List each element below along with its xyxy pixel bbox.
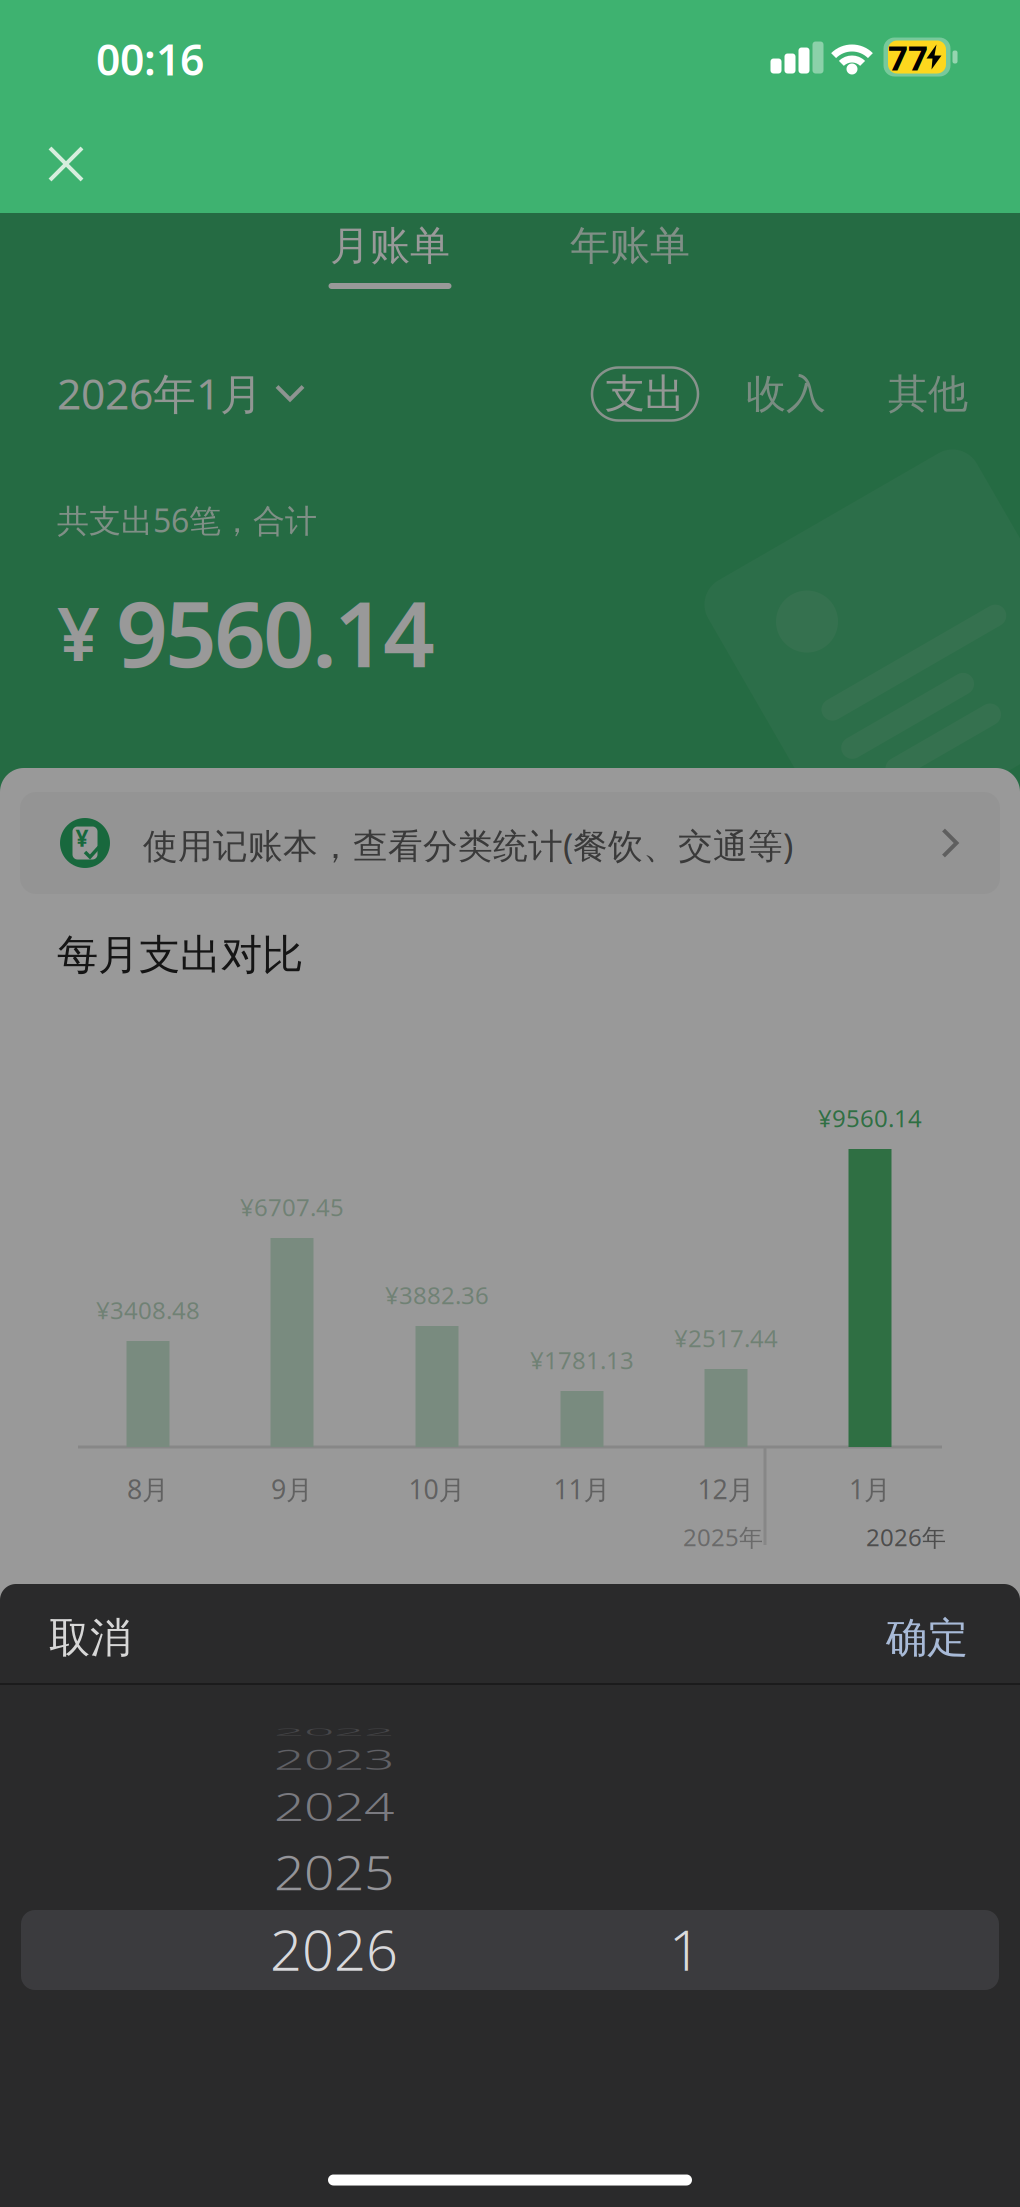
staticText: 2025 [274,1837,394,1907]
button[interactable]: 2026年1月 [57,361,457,425]
button[interactable]: 收入 [733,367,839,420]
button[interactable]: Close [48,146,84,182]
staticText: 2026年 [866,1521,946,1553]
staticText: 00:16 [96,31,204,87]
staticText: 取消 [49,1613,131,1663]
staticText: 支出 [605,369,685,418]
staticText: ¥3408.48 [96,1294,200,1326]
staticText: 77 [888,34,928,80]
staticText: 月账单 [330,221,450,270]
staticText: 确定 [886,1613,968,1663]
staticText: 年账单 [570,221,690,270]
staticText: 8月 [127,1471,169,1507]
staticText: ¥1781.13 [530,1344,634,1376]
staticText: 共支出56笔，合计 [57,499,317,541]
staticText: 每月支出对比 [57,930,303,980]
staticText: 使用记账本，查看分类统计(餐饮、交通等) [143,822,793,868]
button[interactable]: 其他 [875,367,981,420]
staticText: 2024 [274,1771,394,1841]
staticText: 2023 [274,1724,394,1794]
staticText: ¥2517.44 [674,1322,778,1354]
staticText: 2026年1月 [57,365,263,421]
staticText: 10月 [408,1471,465,1507]
button[interactable]: 月账单 [300,211,480,281]
staticText: 2022 [274,1697,394,1767]
staticText: 12月 [697,1471,754,1507]
staticText: 其他 [888,369,968,418]
button[interactable]: ¥ [20,792,1000,894]
button[interactable]: 确定 [808,1600,968,1676]
button[interactable]: 取消 [49,1600,209,1676]
button[interactable]: 支出 [592,367,698,420]
staticText: ¥6707.45 [240,1191,344,1223]
staticText: 2025年 [683,1521,763,1553]
staticText: ¥ [75,823,88,853]
staticText: 2026 [270,1912,398,1986]
staticText: 9月 [271,1471,313,1507]
staticText: 收入 [746,369,826,418]
staticText: 9560.14 [116,572,435,692]
button[interactable]: 年账单 [540,211,720,281]
staticText: ¥ [57,582,100,682]
staticText: 1月 [849,1471,891,1507]
staticText: 1 [669,1912,701,1986]
staticText: ¥9560.14 [818,1102,922,1134]
staticText: ¥3882.36 [385,1279,489,1311]
staticText: 11月 [553,1471,610,1507]
